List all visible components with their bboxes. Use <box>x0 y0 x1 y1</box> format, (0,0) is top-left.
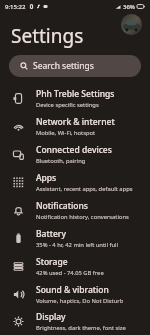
staticText: Bluetooth, pairing <box>36 157 86 165</box>
button[interactable]: Battery <box>0 224 150 252</box>
staticText: Volume, haptics, Do Not Disturb <box>36 297 124 305</box>
staticText: 36% <box>123 3 135 11</box>
staticText: Device specific settings <box>36 101 99 109</box>
button[interactable]: Sound & vibration <box>0 280 150 308</box>
staticText: Brightness, dark theme, font size <box>36 324 126 332</box>
button[interactable]: Display <box>0 308 150 335</box>
staticText: Mobile, Wi-Fi, hotspot <box>36 129 96 137</box>
staticText: Phh Treble Settings <box>36 88 115 100</box>
button[interactable]: Storage <box>0 252 150 280</box>
staticText: Notifications <box>36 200 88 212</box>
staticText: Settings <box>11 23 84 49</box>
button[interactable]: Phh Treble Settings <box>0 84 150 112</box>
staticText: Apps <box>36 172 57 184</box>
staticText: Connected devices <box>36 144 112 156</box>
staticText: Search settings <box>33 60 94 72</box>
staticText: Battery <box>36 228 66 240</box>
staticText: 9:15:22 <box>5 3 26 11</box>
staticText: Notification history, conversations <box>36 213 129 221</box>
staticText: Storage <box>36 256 68 268</box>
staticText: 35% - 4 hr, 42 min left until full <box>36 241 119 249</box>
button[interactable]: Notifications <box>0 196 150 224</box>
button[interactable]: Account avatar <box>121 14 142 35</box>
button[interactable]: Apps <box>0 168 150 196</box>
staticText: Display <box>36 311 66 323</box>
staticText: Network & internet <box>36 116 115 128</box>
staticText: 42% used - 74.05 GB free <box>36 269 104 277</box>
button[interactable]: Search settings <box>9 55 141 77</box>
button[interactable]: Connected devices <box>0 140 150 168</box>
staticText: Assistant, recent apps, default apps <box>36 185 133 193</box>
button[interactable]: Network & internet <box>0 112 150 140</box>
staticText: Sound & vibration <box>36 284 109 296</box>
